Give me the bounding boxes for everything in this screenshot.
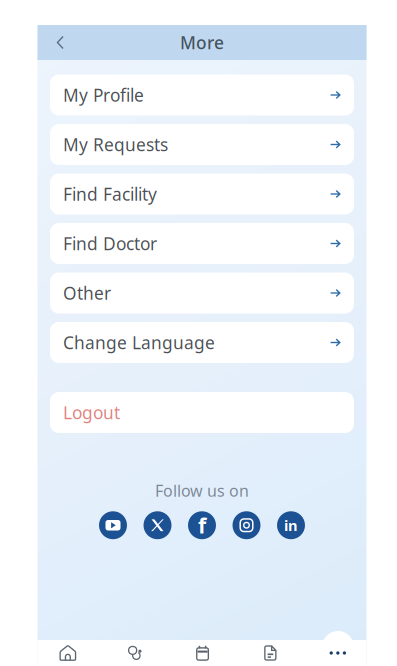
staticText: My Requests <box>63 133 168 156</box>
button[interactable]: LinkedIn <box>277 511 305 539</box>
button[interactable]: X <box>143 511 171 539</box>
button[interactable]: Doctors <box>102 640 169 666</box>
staticText: Follow us on <box>155 480 249 501</box>
button[interactable]: Instagram <box>232 511 260 539</box>
button[interactable]: My Requests <box>50 124 354 165</box>
staticText: Other <box>63 281 111 304</box>
button[interactable]: Find Doctor <box>50 223 354 264</box>
staticText: Change Language <box>63 331 215 354</box>
button[interactable]: My Profile <box>50 74 354 115</box>
button[interactable]: Records <box>237 640 304 666</box>
staticText: Find Doctor <box>63 232 157 255</box>
button[interactable]: Back <box>45 27 75 57</box>
button[interactable]: Change Language <box>50 322 354 363</box>
staticText: Logout <box>63 401 120 424</box>
staticText: More <box>180 31 224 54</box>
button[interactable]: Other <box>50 272 354 313</box>
button[interactable]: Find Facility <box>50 173 354 214</box>
staticText: Find Facility <box>63 182 157 205</box>
button[interactable]: Facebook <box>188 511 216 539</box>
button[interactable]: YouTube <box>99 511 127 539</box>
button[interactable]: Logout <box>50 392 354 433</box>
staticText: f <box>198 511 206 539</box>
button[interactable]: Appointments <box>169 640 237 666</box>
button[interactable]: More <box>304 640 372 666</box>
button[interactable]: Home <box>34 640 102 666</box>
staticText: in <box>284 515 298 535</box>
staticText: My Profile <box>63 83 144 106</box>
